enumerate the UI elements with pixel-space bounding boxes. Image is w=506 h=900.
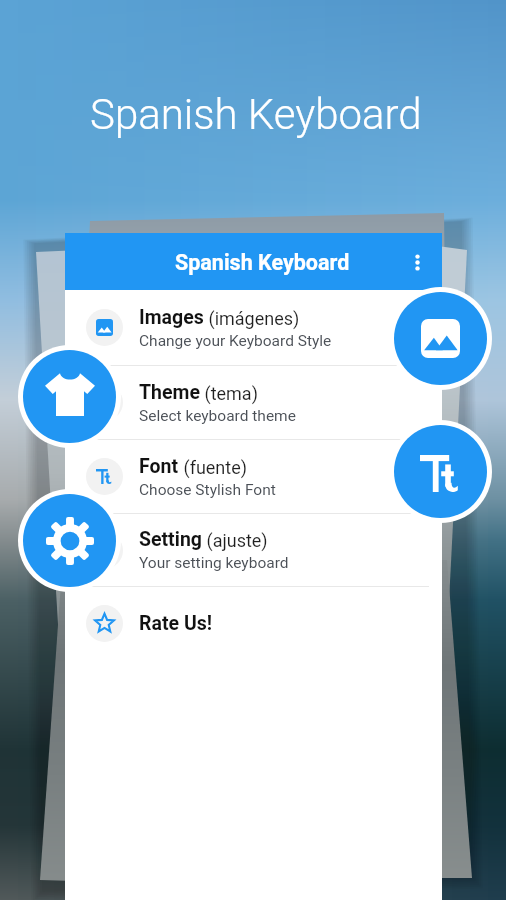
button[interactable]: Rate Us! (65, 587, 442, 659)
staticText: Select keyboard theme (139, 407, 296, 425)
button[interactable]: Theme (18, 345, 121, 448)
staticText: (imágenes) (204, 308, 300, 329)
button[interactable]: Font (389, 420, 492, 523)
staticText: Theme (139, 381, 200, 404)
button[interactable]: Setting (65, 514, 442, 586)
staticText: Setting (139, 528, 202, 551)
button[interactable]: More options (395, 240, 439, 284)
staticText: (tema) (200, 383, 258, 404)
staticText: Choose Stylish Font (139, 481, 276, 499)
staticText: Your setting keyboard (139, 554, 289, 572)
staticText: (fuente) (179, 457, 247, 478)
button[interactable]: Font (65, 440, 442, 513)
staticText: Spanish Keyboard (90, 90, 422, 139)
staticText: Images (139, 306, 204, 329)
button[interactable]: Settings (18, 489, 121, 592)
staticText: Change your Keyboard Style (139, 332, 332, 350)
button[interactable]: Images (65, 290, 442, 365)
staticText: Font (139, 455, 179, 478)
staticText: Spanish Keyboard (175, 250, 350, 275)
staticText: Rate Us! (139, 612, 213, 635)
button[interactable]: Theme (65, 366, 442, 439)
staticText: (ajuste) (202, 530, 268, 551)
button[interactable]: Images (389, 287, 492, 390)
